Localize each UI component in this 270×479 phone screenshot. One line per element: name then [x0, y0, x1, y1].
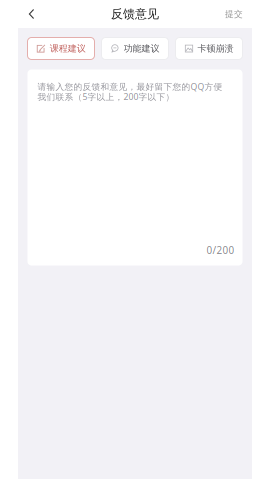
staticText: 卡顿崩溃 — [197, 43, 233, 54]
button[interactable]: 功能建议 — [101, 37, 168, 59]
staticText: 请输入您的反馈和意见，最好留下您的QQ方便我们联系（5字以上，200字以下） — [37, 81, 222, 102]
staticText: 反馈意见 — [111, 6, 159, 21]
button[interactable]: 课程建议 — [27, 37, 94, 59]
staticText: 0/200 — [206, 244, 234, 257]
button[interactable]: 提交 — [220, 0, 248, 28]
button[interactable]: 卡顿崩溃 — [175, 37, 242, 59]
staticText: 课程建议 — [50, 43, 86, 54]
staticText: 功能建议 — [123, 43, 159, 54]
button[interactable]: Back — [20, 0, 42, 28]
staticText: 提交 — [225, 8, 243, 19]
